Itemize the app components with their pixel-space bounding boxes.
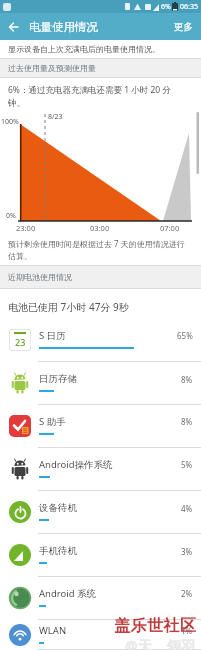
staticText: 8% bbox=[181, 416, 193, 427]
staticText: 手机待机 bbox=[39, 545, 181, 557]
staticText: 6%：通过充电器充满电还需要 1 小时 20 分 钟。 bbox=[8, 84, 171, 108]
staticText: 预计剩余使用时间是根据过去 7 天的使用情况进行 估算。 bbox=[8, 238, 185, 262]
button[interactable]: 手机待机 bbox=[0, 534, 201, 577]
button[interactable]: WLAN bbox=[0, 620, 201, 650]
staticText: 3% bbox=[181, 546, 193, 557]
staticText: 6% bbox=[161, 2, 171, 12]
staticText: 8% bbox=[181, 374, 193, 385]
button[interactable]: 23 bbox=[0, 319, 201, 362]
button[interactable]: Android操作系统 bbox=[0, 448, 201, 491]
button[interactable] bbox=[0, 13, 27, 40]
staticText: 过去使用量及预测使用量 bbox=[8, 63, 96, 73]
staticText: 100% bbox=[1, 117, 19, 127]
button[interactable]: S 助手 bbox=[0, 405, 201, 448]
staticText: 0% bbox=[6, 211, 16, 221]
staticText: Android操作系统 bbox=[39, 458, 181, 471]
staticText: 8/23 bbox=[48, 112, 63, 122]
staticText: S 日历 bbox=[39, 329, 177, 342]
staticText: S 助手 bbox=[39, 415, 181, 428]
staticText: 日历存储 bbox=[39, 373, 181, 385]
staticText: 03:00 bbox=[90, 223, 110, 233]
staticText: 06:35 bbox=[180, 2, 198, 12]
staticText: 电池已使用 7小时 47分 9秒 bbox=[8, 300, 129, 314]
staticText: 近期电池使用情况 bbox=[8, 272, 72, 282]
button[interactable]: Android 系统 bbox=[0, 577, 201, 620]
staticText: Android 系统 bbox=[39, 587, 181, 600]
staticText: 设备待机 bbox=[39, 502, 181, 514]
staticText: 23 bbox=[15, 336, 26, 348]
staticText: WLAN bbox=[39, 624, 181, 637]
staticText: 2% bbox=[181, 588, 193, 599]
button[interactable]: 日历存储 bbox=[0, 362, 201, 405]
staticText: 显示设备自上次充满电后的电量使用情况。 bbox=[8, 44, 160, 54]
staticText: 盖乐世社区 bbox=[114, 616, 197, 636]
staticText: 更多 bbox=[174, 21, 193, 33]
staticText: 07:00 bbox=[160, 223, 180, 233]
button[interactable]: 设备待机 bbox=[0, 491, 201, 534]
staticText: 1% bbox=[181, 625, 193, 636]
staticText: @天、翎羽 bbox=[125, 636, 197, 650]
button[interactable]: 更多 bbox=[166, 15, 201, 39]
staticText: 65% bbox=[177, 330, 193, 341]
staticText: 电量使用情况 bbox=[29, 20, 98, 34]
staticText: 4% bbox=[181, 503, 193, 514]
staticText: 5% bbox=[181, 459, 193, 470]
staticText: 23:00 bbox=[16, 223, 36, 233]
